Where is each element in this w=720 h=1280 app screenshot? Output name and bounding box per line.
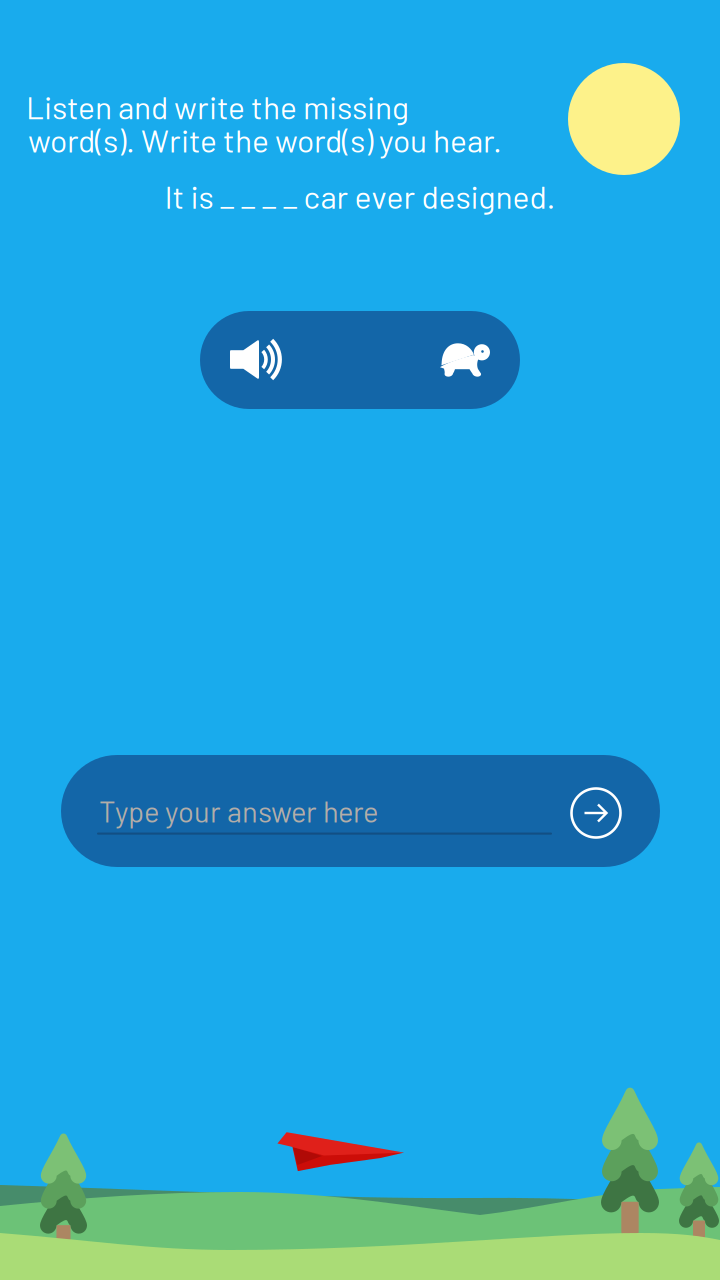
staticText: It is _ _ _ _ car ever designed.: [164, 177, 555, 215]
staticText: word(s). Write the word(s) you hear.: [28, 121, 502, 159]
staticText: Listen and write the missing: [26, 87, 409, 126]
button[interactable]: Play audio: [200, 311, 520, 409]
staticText: Type your answer here: [99, 793, 378, 828]
button[interactable]: Type your answer here: [61, 755, 660, 867]
